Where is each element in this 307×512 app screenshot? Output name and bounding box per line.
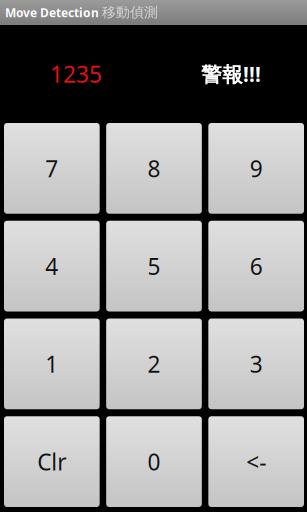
button[interactable]: 4 <box>4 221 100 312</box>
staticText: 8 <box>147 153 160 183</box>
button[interactable]: 2 <box>106 318 202 409</box>
staticText: <- <box>246 447 266 477</box>
staticText: 警報!!! <box>201 60 261 88</box>
button[interactable]: 6 <box>208 221 304 312</box>
button[interactable]: 5 <box>106 221 202 312</box>
button[interactable]: Clear <box>4 416 100 507</box>
staticText: 6 <box>250 251 263 281</box>
staticText: Clr <box>37 447 66 477</box>
staticText: 0 <box>147 447 160 477</box>
staticText: 4 <box>45 251 58 281</box>
staticText: 1 <box>45 349 58 379</box>
button[interactable]: 7 <box>4 123 100 214</box>
button[interactable]: Backspace <box>208 416 304 507</box>
staticText: 7 <box>45 153 58 183</box>
button[interactable]: 9 <box>208 123 304 214</box>
button[interactable]: 0 <box>106 416 202 507</box>
staticText: 3 <box>250 349 263 379</box>
staticText: 2 <box>147 349 160 379</box>
button[interactable]: 1 <box>4 318 100 409</box>
button[interactable]: 3 <box>208 318 304 409</box>
staticText: 1235 <box>50 59 102 89</box>
staticText: 5 <box>147 251 160 281</box>
button[interactable]: 8 <box>106 123 202 214</box>
staticText: 移動偵測 <box>102 4 158 21</box>
staticText: Move Detection <box>5 4 99 20</box>
staticText: 9 <box>250 153 263 183</box>
